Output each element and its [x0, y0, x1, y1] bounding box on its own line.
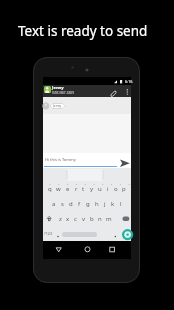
button[interactable]: Jenny	[50, 103, 65, 109]
staticText: a	[52, 200, 56, 208]
staticText: 6:16	[125, 79, 133, 84]
staticText: j	[104, 200, 106, 208]
button[interactable]	[43, 153, 131, 168]
staticText: x	[66, 215, 70, 223]
staticText: t	[82, 185, 85, 193]
staticText: i	[107, 185, 109, 193]
staticText: n	[98, 215, 102, 223]
staticText: h	[95, 200, 99, 208]
staticText: ?123	[44, 231, 53, 236]
button[interactable]	[73, 241, 102, 259]
staticText: c	[74, 215, 77, 223]
staticText: b	[90, 215, 94, 223]
staticText: l	[120, 200, 122, 208]
staticText: v	[82, 215, 86, 223]
staticText: y	[90, 185, 94, 193]
button[interactable]	[62, 232, 97, 237]
staticText: Jenny	[53, 104, 62, 108]
staticText: (555) 867-5309	[52, 91, 74, 95]
staticText: e	[66, 185, 70, 193]
staticText: d	[69, 200, 73, 208]
staticText: q	[48, 185, 52, 193]
staticText: z	[59, 215, 62, 223]
staticText: Hi this is Tommy	[45, 157, 76, 162]
button[interactable]	[122, 229, 133, 240]
staticText: w	[56, 185, 61, 193]
staticText: u	[98, 185, 102, 193]
staticText: Jenny	[52, 85, 64, 91]
staticText: p	[122, 185, 126, 193]
staticText: g	[86, 200, 90, 208]
button[interactable]: Jenny	[43, 85, 131, 97]
staticText: o	[114, 185, 118, 193]
staticText: s	[61, 200, 64, 208]
staticText: m	[106, 215, 112, 223]
button[interactable]	[43, 241, 73, 259]
staticText: k	[111, 200, 115, 208]
staticText: r	[75, 185, 78, 193]
button[interactable]	[102, 241, 131, 259]
staticText: f	[78, 200, 81, 208]
staticText: Text is ready to send	[18, 22, 148, 40]
